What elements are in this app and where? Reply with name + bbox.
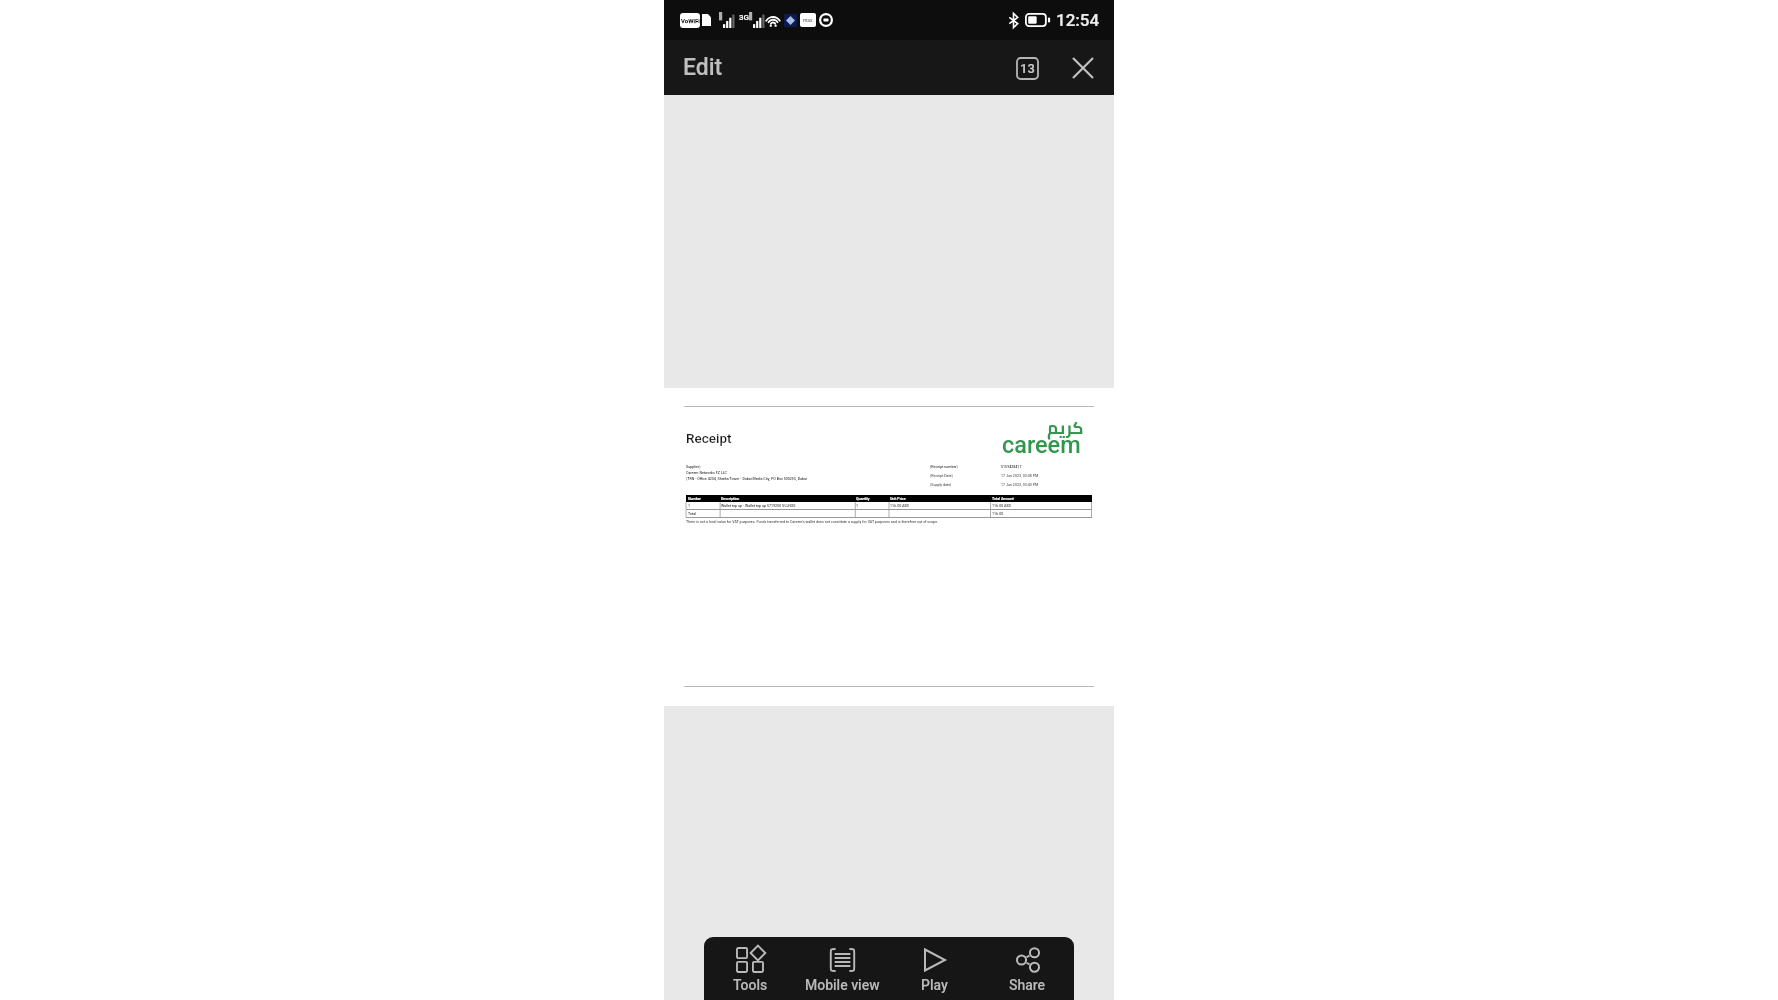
staticText: Supplier) xyxy=(686,465,701,469)
button[interactable]: Close xyxy=(1062,47,1104,89)
staticText: (Receipt Date) xyxy=(930,474,953,478)
staticText: 1 xyxy=(856,504,859,508)
staticText: 5159428417 xyxy=(1001,465,1022,469)
staticText: Careem Networks FZ LLC xyxy=(686,471,727,475)
staticText: Total xyxy=(688,512,697,516)
staticText: 116.00 xyxy=(992,512,1004,516)
staticText: Mobile view xyxy=(805,977,880,993)
staticText: Receipt xyxy=(686,430,732,446)
staticText: (Receipt number) xyxy=(930,465,958,469)
staticText: careem xyxy=(1002,431,1081,459)
staticText: Play xyxy=(921,977,948,993)
staticText: Quantity xyxy=(856,497,870,501)
button[interactable]: Tools xyxy=(704,937,796,1000)
staticText: (Supply date) xyxy=(930,483,952,487)
staticText: 17 Jun 2023, 03:43 PM xyxy=(1001,483,1039,487)
staticText: Share xyxy=(1009,977,1046,993)
staticText: 13 xyxy=(1020,61,1035,76)
staticText: 116.00 AED xyxy=(992,504,1011,508)
staticText: VoWiFi xyxy=(681,17,700,24)
staticText: 12:54 xyxy=(1056,10,1100,30)
button[interactable]: Page 13 of document xyxy=(1005,46,1049,90)
staticText: Description xyxy=(721,497,740,501)
staticText: كريم xyxy=(1047,412,1084,444)
staticText: 3G xyxy=(739,13,749,22)
staticText: 17 Jun 2023, 03:08 PM xyxy=(1001,474,1039,478)
button[interactable]: Share xyxy=(981,937,1074,1000)
staticText: Unit Price xyxy=(890,497,906,501)
staticText: Total Amount xyxy=(992,497,1014,501)
button[interactable]: Mobile view xyxy=(796,937,888,1000)
staticText: 116.00 AED xyxy=(890,504,909,508)
button[interactable]: Play xyxy=(888,937,981,1000)
staticText: (TRN - Office 4204, Shatha Tower - Dubai… xyxy=(686,477,807,481)
staticText: Number xyxy=(688,497,701,501)
staticText: Edit xyxy=(683,54,723,81)
staticText: There is not a local value for VAT purpo… xyxy=(686,520,939,524)
staticText: Tools xyxy=(733,977,768,993)
staticText: max xyxy=(803,17,813,23)
staticText: 1 xyxy=(688,504,691,508)
staticText: Wallet top up - Wallet top up 5719200 VL… xyxy=(721,504,796,508)
